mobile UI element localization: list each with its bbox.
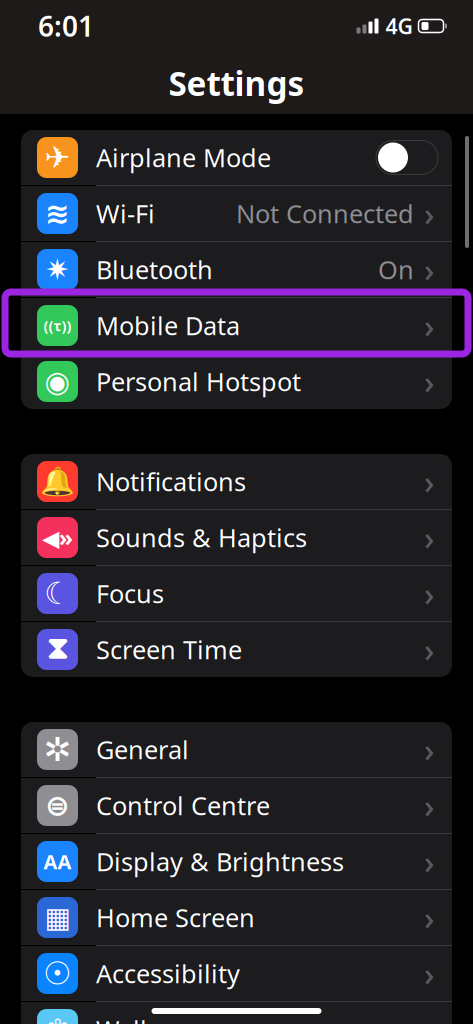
staticText: 6:01 — [38, 7, 94, 45]
staticText: › — [424, 628, 434, 671]
button[interactable]: ▦ — [21, 890, 452, 945]
button[interactable]: ⊜ — [21, 778, 452, 833]
staticText: ☾ — [44, 576, 71, 611]
button[interactable]: ◉ — [21, 354, 452, 409]
staticText: › — [424, 784, 434, 827]
button[interactable]: ☉ — [21, 946, 452, 1001]
staticText: ✾ — [46, 1014, 69, 1024]
button[interactable]: ✈ — [21, 130, 452, 185]
staticText: › — [424, 516, 434, 559]
staticText: › — [424, 728, 434, 771]
staticText: 🔔 — [40, 465, 75, 497]
staticText: Screen Time — [96, 633, 242, 666]
staticText: › — [424, 192, 434, 235]
staticText: Wi-Fi — [96, 197, 155, 230]
staticText: ◉ — [44, 365, 70, 398]
staticText: Sounds & Haptics — [96, 521, 307, 554]
staticText: ✲ — [43, 731, 71, 768]
button[interactable]: ⧗ — [21, 622, 452, 677]
button[interactable]: ☾ — [21, 566, 452, 621]
staticText: Control Centre — [96, 789, 270, 822]
staticText: ✈ — [44, 140, 70, 175]
staticText: General — [96, 733, 189, 766]
staticText: Settings — [168, 61, 304, 105]
staticText: ≋ — [45, 197, 70, 230]
staticText: Mobile Data — [96, 309, 240, 342]
staticText: Notifications — [96, 465, 246, 498]
button[interactable]: ✷ — [21, 242, 452, 297]
staticText: ⊜ — [45, 789, 70, 822]
staticText: ✷ — [45, 253, 70, 286]
button[interactable]: ✾ — [21, 1002, 452, 1024]
staticText: ((τ)) — [43, 316, 71, 335]
staticText: Display & Brightness — [96, 845, 344, 878]
button[interactable]: AA — [21, 834, 452, 889]
staticText: › — [424, 248, 434, 291]
staticText: AA — [43, 848, 71, 875]
staticText: Home Screen — [96, 901, 255, 934]
staticText: Focus — [96, 577, 164, 610]
staticText: Personal Hotspot — [96, 365, 301, 398]
button[interactable]: ((τ)) — [21, 298, 452, 353]
staticText: Accessibility — [96, 957, 240, 990]
staticText: › — [424, 460, 434, 503]
staticText: Wallpaper — [96, 1013, 217, 1024]
staticText: › — [424, 572, 434, 615]
staticText: › — [424, 896, 434, 939]
staticText: On — [378, 253, 414, 286]
staticText: › — [424, 840, 434, 883]
staticText: › — [424, 360, 434, 403]
staticText: Not Connected — [236, 197, 414, 230]
staticText: ☉ — [43, 955, 72, 992]
button[interactable]: ✲ — [21, 722, 452, 777]
staticText: ⧗ — [46, 634, 68, 664]
staticText: › — [424, 304, 434, 347]
staticText: ◀» — [42, 522, 73, 552]
button[interactable]: 🔔 — [21, 454, 452, 509]
button[interactable]: ◀» — [21, 510, 452, 565]
button[interactable]: ≋ — [21, 186, 452, 241]
staticText: Bluetooth — [96, 253, 213, 286]
staticText: Airplane Mode — [96, 141, 271, 174]
staticText: › — [424, 952, 434, 995]
staticText: 4G — [385, 12, 412, 40]
staticText: ▦ — [44, 902, 70, 933]
